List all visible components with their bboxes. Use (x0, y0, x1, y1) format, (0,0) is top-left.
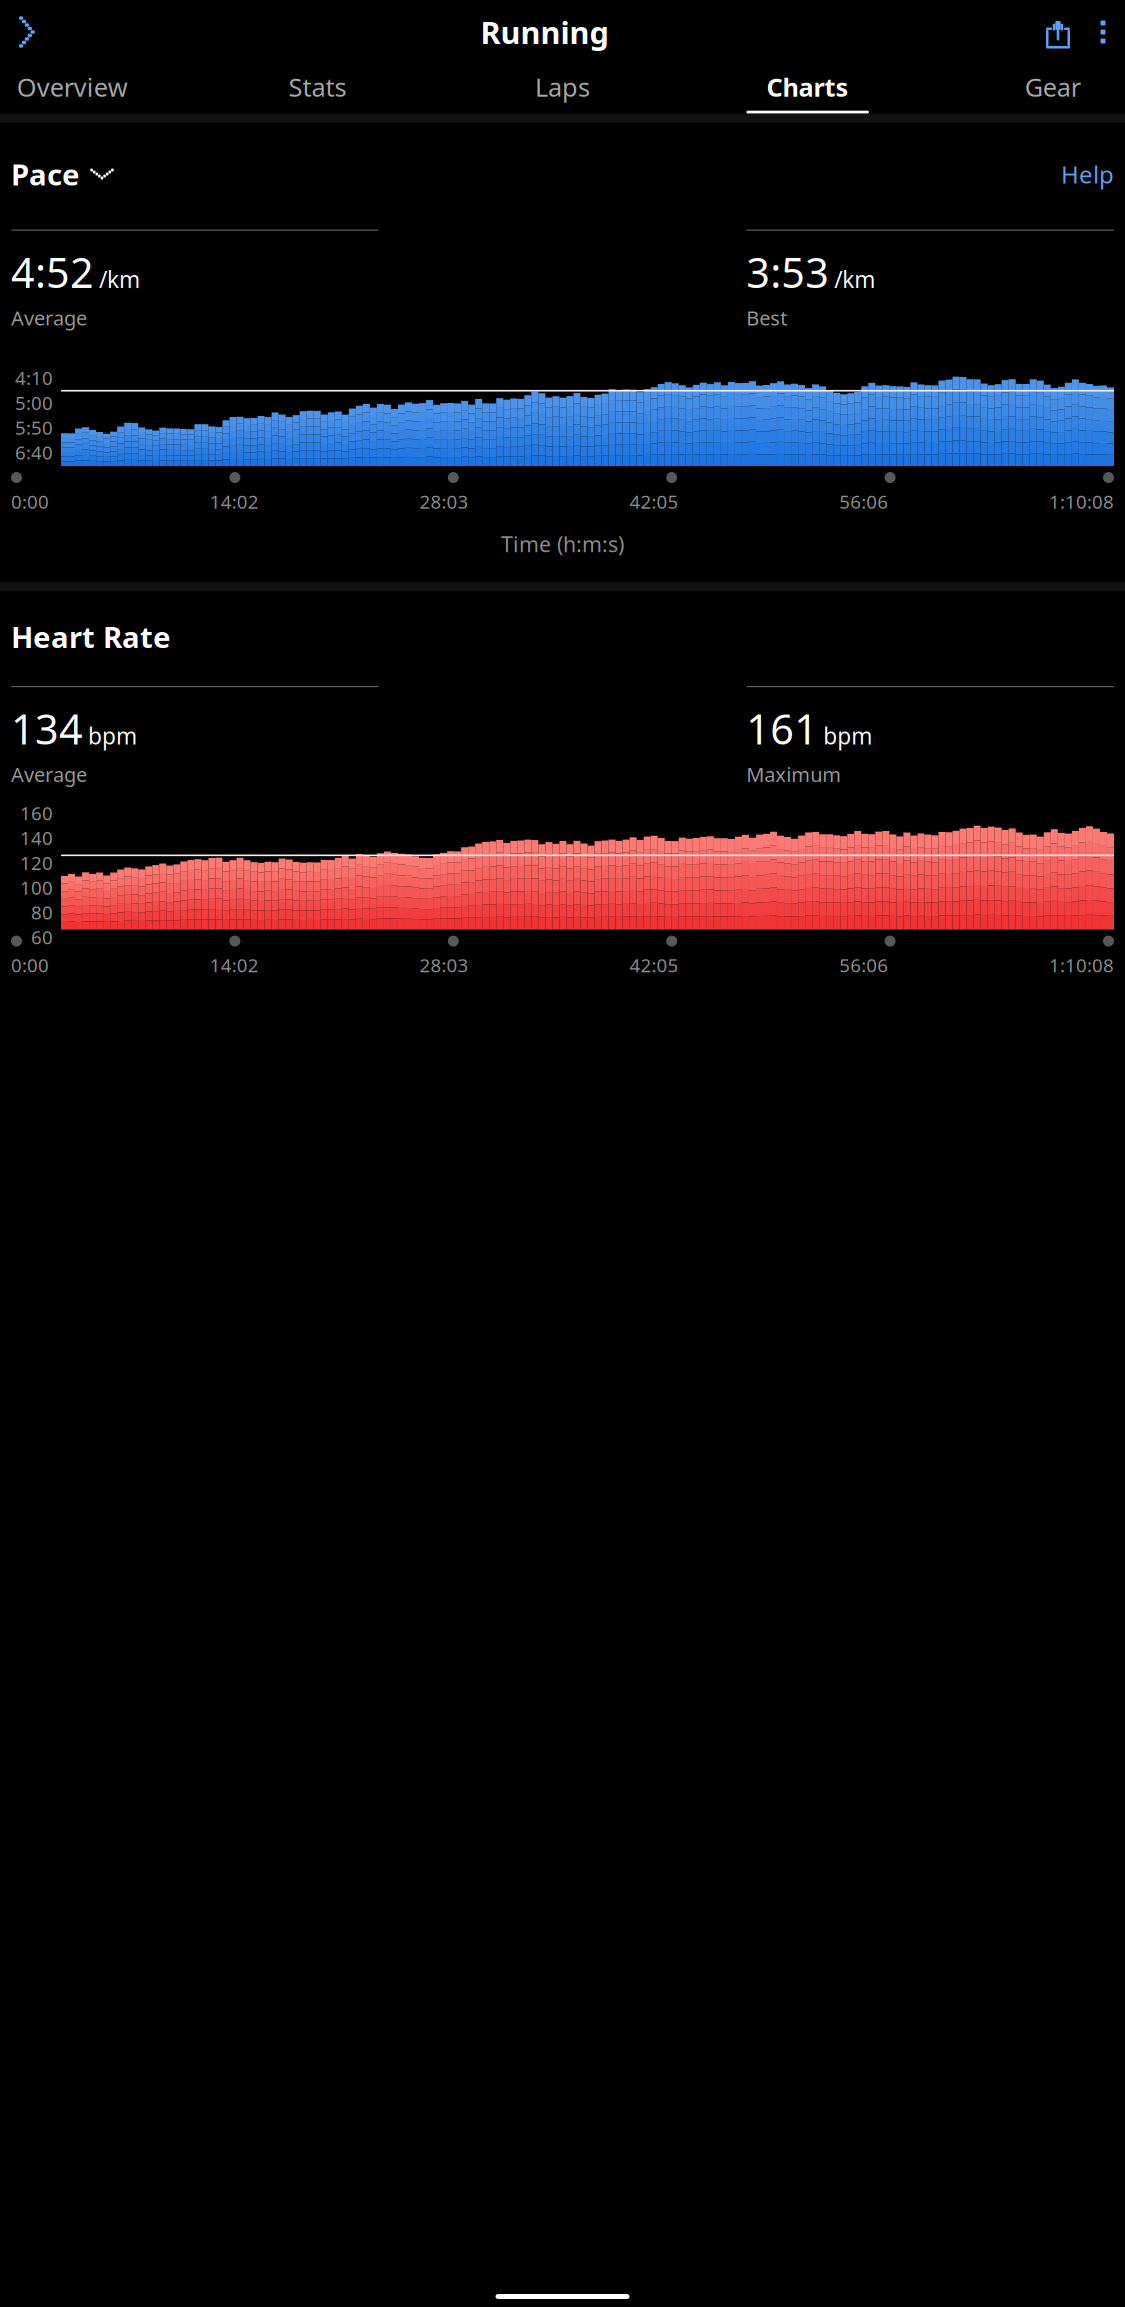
staticText: Best (746, 304, 787, 331)
button[interactable]: Pace (11, 149, 111, 200)
staticText: 42:05 (629, 489, 678, 514)
staticText: 56:06 (839, 489, 888, 514)
staticText: 0:00 (11, 489, 49, 514)
staticText: Maximum (746, 761, 841, 788)
staticText: 28:03 (420, 489, 469, 514)
staticText: 5:50 (15, 415, 53, 440)
staticText: Average (11, 304, 87, 331)
staticText: 42:05 (629, 953, 678, 977)
staticText: 5:00 (15, 390, 53, 415)
staticText: 161 (746, 701, 818, 756)
staticText: 120 (20, 850, 53, 875)
staticText: 134 (11, 701, 83, 756)
staticText: Gear (1025, 70, 1081, 104)
staticText: 1:10:08 (1049, 489, 1114, 514)
staticText: 4:10 (15, 365, 53, 390)
staticText: 100 (20, 875, 53, 900)
staticText: Laps (535, 70, 590, 104)
button[interactable]: Back (0, 10, 54, 54)
staticText: 56:06 (839, 953, 888, 977)
staticText: Help (1061, 158, 1114, 190)
button[interactable]: Help (1047, 152, 1114, 196)
staticText: Time (h:m:s) (501, 530, 624, 558)
staticText: 140 (20, 825, 53, 850)
staticText: 3:53 (746, 245, 829, 299)
button[interactable]: Gear (991, 60, 1114, 114)
staticText: 4:52 (11, 245, 94, 299)
staticText: 14:02 (210, 489, 259, 514)
staticText: /km (834, 264, 875, 294)
staticText: Pace (11, 155, 80, 194)
staticText: 80 (31, 900, 53, 925)
button[interactable]: Stats (256, 60, 379, 114)
button[interactable]: More options (1081, 10, 1125, 54)
staticText: Charts (767, 70, 849, 104)
button[interactable]: Charts (746, 60, 869, 114)
staticText: 1:10:08 (1049, 953, 1114, 977)
staticText: 160 (20, 801, 53, 825)
staticText: Average (11, 761, 87, 788)
staticText: Stats (288, 70, 346, 104)
staticText: 14:02 (210, 953, 259, 977)
staticText: 28:03 (420, 953, 469, 977)
button[interactable]: Laps (501, 60, 624, 114)
staticText: bpm (88, 721, 137, 751)
staticText: 6:40 (15, 440, 53, 465)
staticText: Overview (17, 70, 128, 104)
staticText: Running (480, 12, 608, 52)
staticText: bpm (823, 721, 872, 751)
staticText: 0:00 (11, 953, 49, 977)
staticText: Heart Rate (11, 617, 171, 656)
staticText: /km (99, 264, 140, 294)
button[interactable]: Overview (11, 60, 134, 114)
staticText: 60 (31, 925, 53, 949)
button[interactable]: Share (1035, 10, 1081, 54)
